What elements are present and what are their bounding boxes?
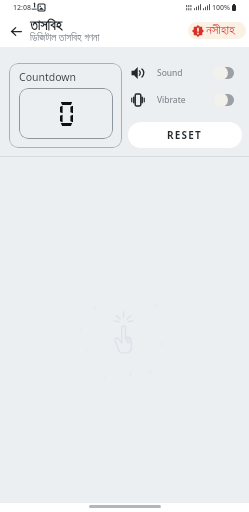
staticText: 12:08 — [13, 3, 31, 13]
button[interactable]: RESET — [128, 122, 242, 148]
staticText: Countdown — [19, 70, 77, 84]
staticText: Vibrate — [157, 94, 186, 106]
staticText: Sound — [157, 67, 183, 79]
button[interactable]: নসীহাহ — [188, 22, 246, 39]
staticText: RESET — [167, 128, 203, 142]
button[interactable]: Back — [4, 19, 28, 43]
staticText: ডিজিটাল তাসবিহ গণনা — [30, 30, 100, 44]
staticText: তাসবিহ — [30, 19, 62, 33]
staticText: 100% — [212, 3, 230, 12]
button[interactable]: Sound — [214, 66, 234, 80]
staticText: নসীহাহ — [206, 24, 235, 37]
button[interactable]: Vibrate — [214, 93, 234, 107]
